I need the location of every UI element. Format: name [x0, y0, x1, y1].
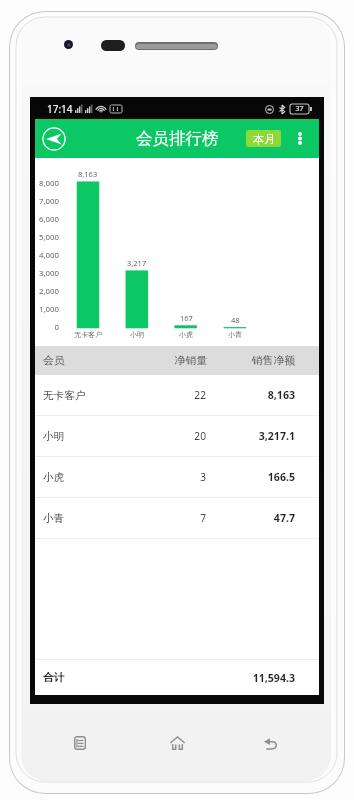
- staticText: 3: [35, 470, 206, 484]
- button[interactable]: Back: [259, 731, 283, 755]
- staticText: 2,000: [39, 286, 59, 297]
- button[interactable]: 小明: [35, 416, 319, 457]
- staticText: 0: [54, 322, 59, 333]
- staticText: 合计: [43, 671, 65, 684]
- staticText: 1,000: [39, 304, 59, 315]
- button[interactable]: 本月: [246, 130, 281, 147]
- staticText: 8,163: [78, 169, 98, 179]
- staticText: 8,000: [39, 178, 59, 189]
- staticText: 本月: [253, 132, 275, 146]
- staticText: 无卡客户: [43, 389, 86, 402]
- staticText: 3,217: [127, 258, 147, 268]
- staticText: 净销量: [35, 354, 207, 368]
- staticText: 7,000: [39, 196, 59, 207]
- staticText: 20: [35, 429, 206, 443]
- staticText: 小青: [43, 512, 65, 525]
- staticText: 48: [231, 315, 240, 325]
- staticText: 会员排行榜: [136, 128, 219, 149]
- staticText: 7: [35, 511, 206, 525]
- staticText: 小明: [43, 430, 65, 443]
- staticText: 17:14: [47, 102, 73, 116]
- staticText: 小明: [130, 330, 144, 339]
- staticText: 小青: [228, 330, 242, 339]
- staticText: 5,000: [39, 232, 59, 243]
- staticText: 47.7: [35, 511, 295, 525]
- staticText: 8,163: [35, 388, 295, 402]
- button[interactable]: 小虎: [35, 457, 319, 498]
- staticText: 3,217.1: [35, 429, 295, 443]
- button[interactable]: 无卡客户: [35, 375, 319, 416]
- staticText: 会员: [43, 354, 65, 368]
- staticText: 销售净额: [35, 354, 295, 368]
- staticText: 3,000: [39, 268, 59, 279]
- staticText: 22: [35, 388, 206, 402]
- button[interactable]: More options: [288, 119, 312, 158]
- staticText: 小虎: [43, 471, 65, 484]
- staticText: 167: [180, 313, 193, 323]
- staticText: 166.5: [35, 470, 295, 484]
- staticText: 6,000: [39, 214, 59, 225]
- button[interactable]: Recent apps: [68, 731, 92, 755]
- button[interactable]: Back: [36, 119, 72, 158]
- staticText: 小虎: [179, 330, 193, 339]
- staticText: 37: [290, 104, 309, 114]
- staticText: 4,000: [39, 250, 59, 261]
- staticText: 11,594.3: [35, 671, 295, 685]
- button[interactable]: Home: [165, 731, 189, 755]
- staticText: 无卡客户: [74, 330, 102, 339]
- button[interactable]: 小青: [35, 498, 319, 539]
